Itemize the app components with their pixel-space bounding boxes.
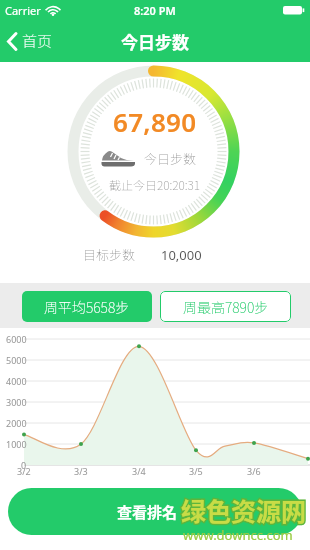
staticText: 周最高7890步 [183,297,269,317]
staticText: 今日步数 [144,149,197,167]
staticText: www.downcc.com [183,526,293,544]
button[interactable]: 周平均5658步 [22,291,152,322]
staticText: 3000 [6,396,27,408]
staticText: Carrier [5,3,41,18]
staticText: 周平均5658步 [44,297,130,317]
staticText: 绿色资源网 [181,492,307,528]
staticText: 2000 [6,417,27,429]
staticText: 首页 [22,30,53,52]
staticText: 3/4 [132,465,146,477]
staticText: 67,890 [113,104,197,139]
staticText: 查看排名 [117,501,178,523]
staticText: 今日步数 [121,29,189,54]
staticText: 截止今日20:20:31 [109,176,201,193]
staticText: 3/3 [74,465,88,477]
staticText: 3/2 [17,465,31,477]
staticText: 目标步数 [83,245,136,264]
staticText: 3/6 [247,465,261,477]
staticText: 5000 [6,354,27,366]
staticText: 绿色资源网 [181,492,307,528]
button[interactable]: 查看排名 [8,488,302,535]
staticText: 10,000 [161,246,202,264]
staticText: 6000 [6,333,27,345]
staticText: 8:20 PM [134,3,176,18]
staticText: 3/5 [189,465,203,477]
staticText: 1000 [6,438,27,450]
staticText: 4000 [6,375,27,387]
button[interactable]: 首页 [6,20,53,62]
staticText: 0 [21,459,27,471]
button[interactable]: 周最高7890步 [160,291,291,322]
